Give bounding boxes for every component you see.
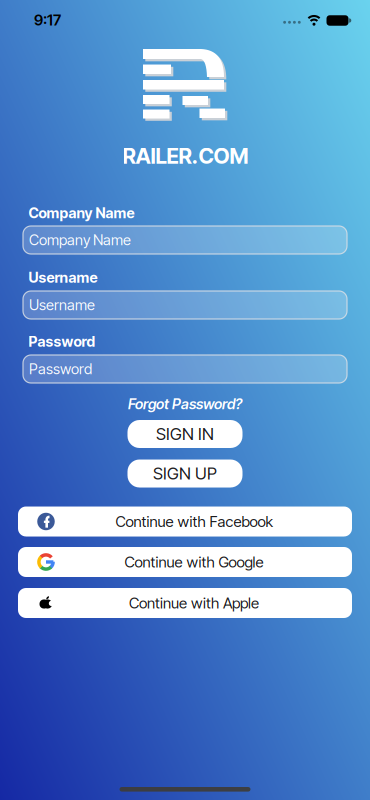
staticText: Username (28, 269, 97, 286)
textField[interactable]: Username (23, 290, 347, 320)
staticText: 9:17 (34, 11, 61, 29)
staticText: Continue with Google (124, 553, 263, 571)
staticText: Continue with Facebook (115, 512, 272, 531)
staticText: Password (23, 354, 127, 384)
staticText: SIGN UP (153, 463, 217, 484)
button[interactable]: Continue with Apple (18, 588, 352, 618)
button[interactable]: SIGN UP (127, 459, 242, 487)
staticText: SIGN IN (156, 424, 214, 444)
staticText: Password (29, 360, 92, 378)
staticText: Password (28, 333, 95, 350)
textField[interactable]: Company Name (23, 225, 347, 255)
textField[interactable]: Password (23, 354, 347, 384)
button[interactable]: SIGN IN (127, 420, 242, 448)
staticText: Company Name (23, 225, 195, 255)
staticText: Username (23, 290, 134, 320)
staticText: Company Name (28, 204, 134, 222)
staticText: Company Name (29, 231, 131, 249)
staticText: Forgot Password? (128, 395, 242, 413)
staticText: Username (29, 296, 95, 314)
staticText: RAILER.COM (122, 143, 248, 169)
button[interactable]: Forgot Password? (128, 395, 242, 413)
staticText: Continue with Apple (129, 594, 259, 612)
button[interactable]: Continue with Google (18, 547, 352, 577)
button[interactable]: Continue with Facebook (18, 506, 352, 536)
